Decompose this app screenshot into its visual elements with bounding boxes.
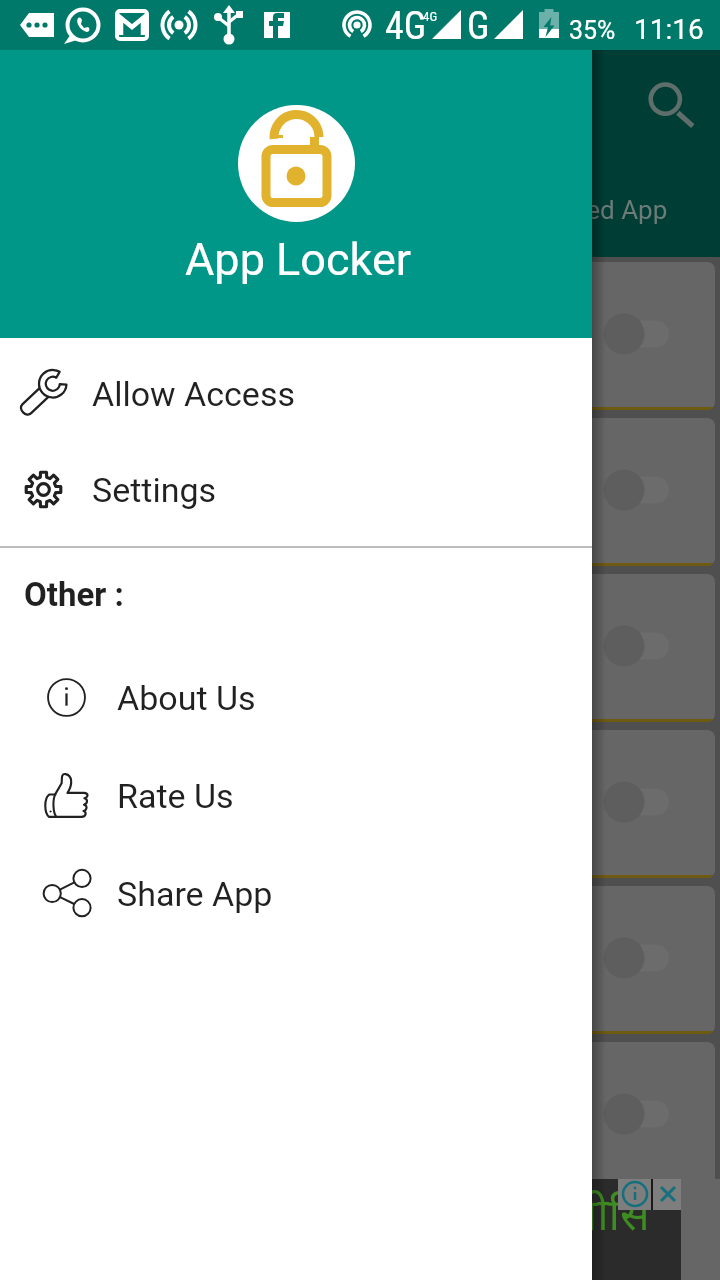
staticText: 35%: [569, 16, 616, 45]
button[interactable]: [8, 730, 715, 878]
button[interactable]: Search: [637, 71, 695, 129]
staticText: Select Locked App: [453, 195, 668, 225]
staticText: 11:16: [634, 13, 704, 46]
button[interactable]: [8, 574, 715, 722]
staticText: Rate Us: [117, 776, 234, 816]
staticText: Settings: [92, 470, 217, 510]
staticText: श्रीसि: [566, 1183, 650, 1243]
staticText: Share App: [117, 874, 273, 914]
button[interactable]: Allow Access: [0, 352, 592, 436]
button[interactable]: [8, 1042, 715, 1190]
staticText: Allow Access: [92, 374, 295, 414]
button[interactable]: [8, 418, 715, 566]
button[interactable]: Settings: [0, 448, 592, 532]
button[interactable]: [8, 262, 715, 410]
staticText: About Us: [117, 678, 256, 718]
staticText: 4G: [423, 9, 438, 24]
button[interactable]: Share App: [0, 852, 592, 936]
staticText: App Locker: [2, 233, 594, 286]
staticText: G: [467, 4, 490, 49]
button[interactable]: Rate Us: [0, 754, 592, 838]
staticText: Other :: [24, 575, 124, 614]
button[interactable]: About Us: [0, 656, 592, 740]
button[interactable]: [8, 886, 715, 1034]
staticText: 4G: [385, 4, 427, 49]
